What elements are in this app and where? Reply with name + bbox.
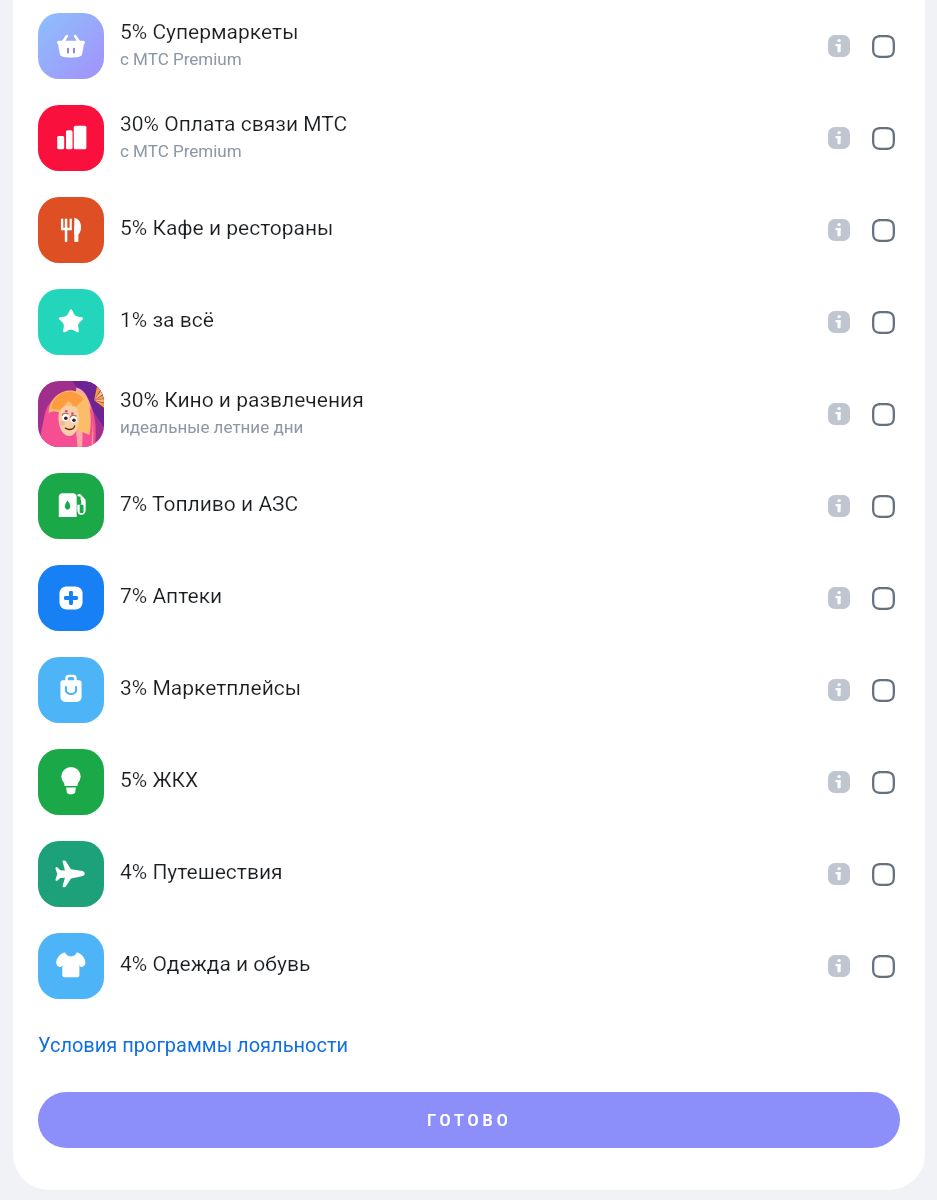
button[interactable]: 1% за всё xyxy=(13,276,925,368)
button[interactable]: Информация о категории xyxy=(817,208,861,252)
button[interactable]: 3% Маркетплейсы xyxy=(13,644,925,736)
staticText: 5% Кафе и рестораны xyxy=(120,216,334,241)
button[interactable]: Выбрать категорию xyxy=(861,760,905,804)
button[interactable]: 5% Кафе и рестораны xyxy=(13,184,925,276)
staticText: 7% Топливо и АЗС xyxy=(120,492,299,517)
button[interactable]: 7% Аптеки xyxy=(13,552,925,644)
button[interactable]: 30% Кино и развлечения xyxy=(13,368,925,460)
button[interactable]: Выбрать категорию xyxy=(861,24,905,68)
button[interactable]: Выбрать категорию xyxy=(861,668,905,712)
button[interactable]: Выбрать категорию xyxy=(861,576,905,620)
staticText: 30% Кино и развлечения xyxy=(120,388,364,413)
button[interactable]: Выбрать категорию xyxy=(861,852,905,896)
button[interactable]: Выбрать категорию xyxy=(861,208,905,252)
button[interactable]: Выбрать категорию xyxy=(861,392,905,436)
staticText: Условия программы лояльности xyxy=(38,1033,349,1056)
button[interactable]: Выбрать категорию xyxy=(861,116,905,160)
button[interactable]: Информация о категории xyxy=(817,668,861,712)
button[interactable]: Информация о категории xyxy=(817,576,861,620)
button[interactable]: 5% ЖКХ xyxy=(13,736,925,828)
staticText: 4% Одежда и обувь xyxy=(120,952,311,977)
button[interactable]: Информация о категории xyxy=(817,944,861,988)
button[interactable]: 5% Супермаркеты xyxy=(13,0,925,92)
staticText: ГОТОВО xyxy=(427,1111,512,1130)
staticText: 1% за всё xyxy=(120,308,214,333)
button[interactable]: Выбрать категорию xyxy=(861,300,905,344)
staticText: 5% ЖКХ xyxy=(120,768,199,793)
staticText: с МТС Premium xyxy=(120,141,242,161)
button[interactable]: ГОТОВО xyxy=(38,1092,900,1148)
staticText: 7% Аптеки xyxy=(120,584,223,609)
staticText: 5% Супермаркеты xyxy=(120,20,299,45)
button[interactable]: Информация о категории xyxy=(817,116,861,160)
button[interactable]: Условия программы лояльности xyxy=(38,1033,349,1056)
button[interactable]: 4% Одежда и обувь xyxy=(13,920,925,1012)
button[interactable]: Информация о категории xyxy=(817,24,861,68)
button[interactable]: Информация о категории xyxy=(817,392,861,436)
button[interactable]: Информация о категории xyxy=(817,760,861,804)
button[interactable]: Выбрать категорию xyxy=(861,484,905,528)
staticText: идеальные летние дни xyxy=(120,417,304,437)
staticText: 30% Оплата связи МТС xyxy=(120,112,348,137)
button[interactable]: 7% Топливо и АЗС xyxy=(13,460,925,552)
staticText: с МТС Premium xyxy=(120,49,242,69)
staticText: 3% Маркетплейсы xyxy=(120,676,302,701)
button[interactable]: Информация о категории xyxy=(817,484,861,528)
button[interactable]: Информация о категории xyxy=(817,300,861,344)
button[interactable]: 30% Оплата связи МТС xyxy=(13,92,925,184)
button[interactable]: Информация о категории xyxy=(817,852,861,896)
button[interactable]: 4% Путешествия xyxy=(13,828,925,920)
button[interactable]: Выбрать категорию xyxy=(861,944,905,988)
staticText: 4% Путешествия xyxy=(120,860,283,885)
